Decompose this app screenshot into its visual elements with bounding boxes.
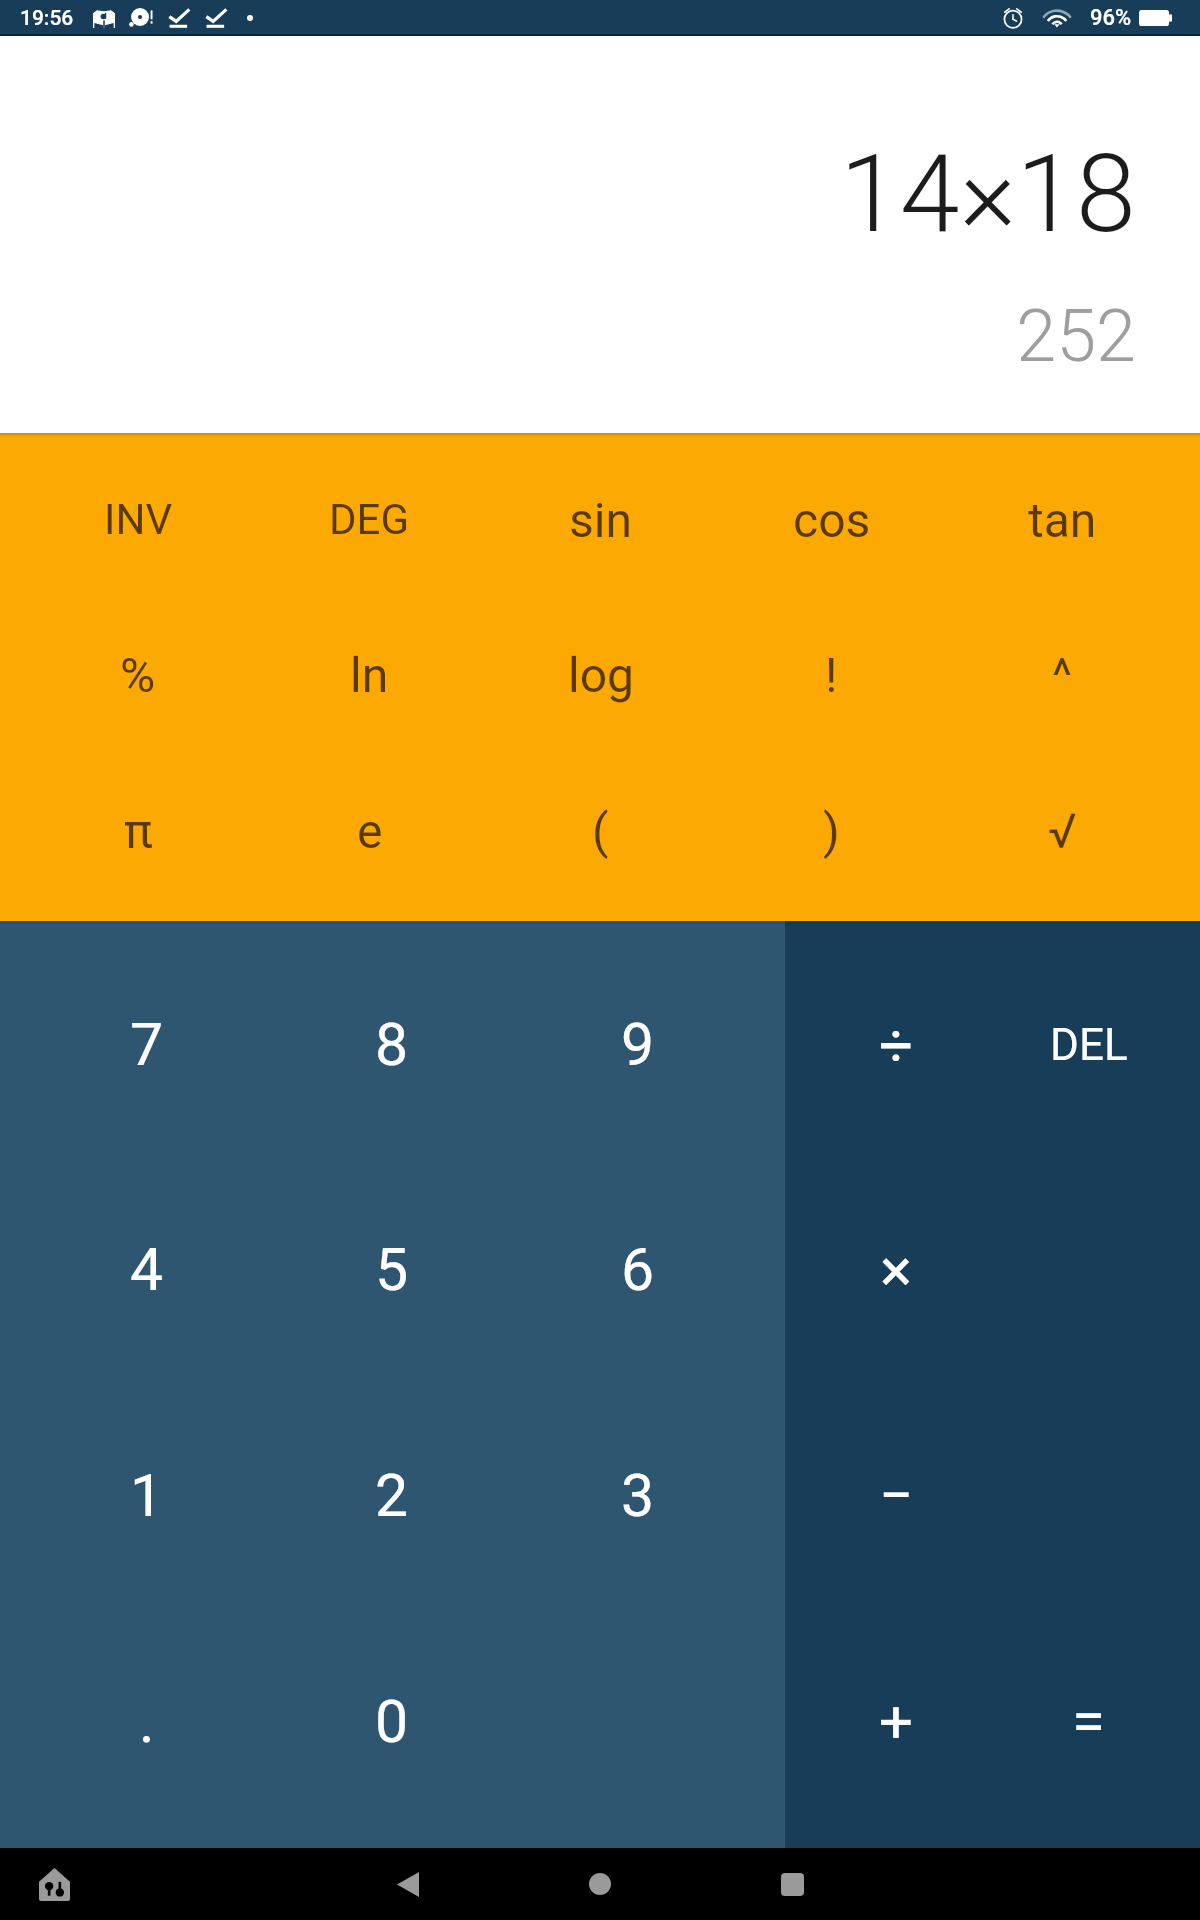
button[interactable]: cos (716, 442, 947, 597)
staticText: ( (592, 803, 609, 859)
staticText: ! (825, 647, 838, 703)
staticText: 1 (130, 1461, 164, 1530)
button[interactable]: . (24, 1608, 269, 1834)
button[interactable]: = (992, 1608, 1185, 1834)
button[interactable]: ( (485, 753, 716, 909)
button[interactable]: 2 (269, 1382, 515, 1608)
button[interactable]: π (22, 753, 254, 909)
button[interactable]: 8 (269, 932, 515, 1157)
button[interactable]: × (800, 1157, 992, 1382)
button[interactable]: e (254, 753, 485, 909)
staticText: e (357, 803, 383, 859)
staticText: 9 (621, 1010, 655, 1079)
staticText: ln (350, 647, 389, 703)
button[interactable]: ) (716, 753, 947, 909)
staticText: 0 (375, 1687, 409, 1756)
staticText: 4 (130, 1235, 164, 1304)
button[interactable]: 1 (24, 1382, 269, 1608)
button[interactable]: 0 (269, 1608, 515, 1834)
button[interactable]: 9 (515, 932, 761, 1157)
staticText: log (568, 647, 634, 703)
staticText: . (139, 1687, 155, 1756)
staticText: ÷ (879, 1010, 914, 1080)
button[interactable]: sin (485, 442, 716, 597)
staticText: + (879, 1686, 914, 1756)
button[interactable]: Home automation (15, 1848, 93, 1920)
staticText: 2 (375, 1461, 409, 1530)
staticText: × (880, 1235, 913, 1305)
button[interactable]: 7 (24, 932, 269, 1157)
staticText: DEL (1050, 1019, 1128, 1071)
staticText: sin (569, 492, 632, 548)
button[interactable]: % (22, 597, 254, 753)
staticText: cos (793, 492, 871, 548)
button[interactable]: 3 (515, 1382, 761, 1608)
staticText: 252 (1016, 294, 1136, 378)
button[interactable]: ! (716, 597, 947, 753)
staticText: % (120, 647, 156, 703)
button[interactable]: 5 (269, 1157, 515, 1382)
button[interactable]: ln (254, 597, 485, 753)
staticText: ^ (1052, 647, 1073, 703)
button[interactable]: − (800, 1382, 992, 1608)
staticText: 3 (621, 1461, 655, 1530)
staticText: 14×18 (839, 131, 1136, 258)
staticText: √ (1048, 803, 1077, 859)
button[interactable]: 6 (515, 1157, 761, 1382)
button[interactable]: DEG (254, 442, 485, 597)
button[interactable]: + (800, 1608, 992, 1834)
staticText: 7 (130, 1010, 164, 1079)
button[interactable]: DEL (992, 932, 1185, 1157)
staticText: − (879, 1460, 914, 1530)
button[interactable]: 4 (24, 1157, 269, 1382)
button[interactable]: Recents (744, 1848, 840, 1920)
staticText: 96% (1090, 5, 1132, 31)
button[interactable]: INV (22, 442, 254, 597)
staticText: 5 (375, 1235, 409, 1304)
staticText: DEG (329, 495, 410, 544)
button[interactable]: Home (552, 1848, 648, 1920)
staticText: tan (1028, 492, 1097, 548)
staticText: ) (823, 803, 840, 859)
button[interactable]: Back (360, 1848, 456, 1920)
button[interactable]: tan (947, 442, 1178, 597)
staticText: π (124, 803, 153, 859)
staticText: = (1072, 1686, 1105, 1756)
staticText: INV (104, 495, 173, 544)
button[interactable]: √ (947, 753, 1178, 909)
staticText: 6 (621, 1235, 655, 1304)
button[interactable]: ÷ (800, 932, 992, 1157)
staticText: 19:56 (20, 6, 74, 31)
staticText: 8 (375, 1010, 409, 1079)
button[interactable]: ^ (947, 597, 1178, 753)
button[interactable]: log (485, 597, 716, 753)
